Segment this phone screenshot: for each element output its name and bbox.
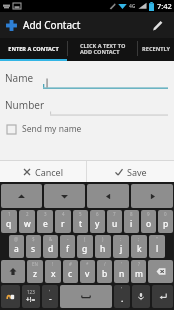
staticText: Name <box>5 71 34 85</box>
staticText: " <box>156 236 158 242</box>
staticText: f <box>66 243 69 255</box>
staticText: p <box>163 218 169 230</box>
button[interactable]: ' <box>114 260 129 283</box>
staticText: / <box>104 261 106 267</box>
button[interactable]: ; <box>131 235 147 258</box>
button[interactable]: Name <box>5 67 168 89</box>
staticText: z <box>33 268 37 280</box>
button[interactable]: ! <box>45 260 61 283</box>
button[interactable]: RECENTLY <box>138 38 174 59</box>
button[interactable]: ' <box>114 285 130 308</box>
staticText: 6 <box>96 211 99 217</box>
staticText: @ <box>14 236 19 242</box>
staticText: ) <box>102 236 104 242</box>
button[interactable]: 5 <box>73 210 88 233</box>
button[interactable]: ) <box>95 235 111 258</box>
staticText: 123 <box>27 289 35 295</box>
staticText: k <box>137 243 142 255</box>
button[interactable]: 3 <box>37 210 53 233</box>
button[interactable]: Arrow left <box>87 184 129 208</box>
button[interactable]: 8 <box>124 210 139 233</box>
button[interactable]: " <box>149 235 165 258</box>
staticText: & <box>49 236 53 242</box>
staticText: RECENTLY <box>142 45 170 53</box>
staticText: 7 <box>113 211 116 217</box>
staticText: Send my name <box>22 123 82 135</box>
button[interactable]: # <box>63 260 78 283</box>
button[interactable]: Arrow up <box>1 184 42 208</box>
staticText: i <box>130 218 133 230</box>
button[interactable]: 9 <box>141 210 156 233</box>
staticText: w <box>24 218 31 230</box>
button[interactable]: @ <box>9 235 24 258</box>
staticText: EN <box>32 261 38 267</box>
staticText: a <box>14 243 19 255</box>
staticText: Save <box>127 166 147 178</box>
staticText: b <box>102 268 108 280</box>
button[interactable]: EN <box>27 260 43 283</box>
staticText: y <box>95 218 100 230</box>
button[interactable]: ( <box>77 235 93 258</box>
staticText: 2 <box>26 211 29 217</box>
staticText: q <box>6 218 12 230</box>
button[interactable]: Send my name <box>6 121 83 137</box>
button[interactable]: Gesture typing <box>1 285 20 308</box>
button[interactable]: Arrow right <box>131 184 173 208</box>
staticText: * <box>86 261 89 267</box>
button[interactable]: Backspace <box>148 260 173 283</box>
staticText: n <box>119 268 125 280</box>
staticText: ; <box>138 236 140 242</box>
staticText: ENTER A CONTACT <box>8 45 59 53</box>
button[interactable]: 1 <box>1 210 17 233</box>
button[interactable]: Arrow down <box>44 184 85 208</box>
staticText: c <box>68 268 73 280</box>
staticText: Number <box>5 98 45 112</box>
staticText: $ <box>32 236 35 242</box>
button[interactable]: : <box>113 235 129 258</box>
button[interactable]: Edit <box>145 13 169 37</box>
button[interactable]: , <box>42 285 58 308</box>
button[interactable]: 0 <box>158 210 173 233</box>
staticText: s <box>31 243 36 255</box>
button[interactable]: - <box>60 235 75 258</box>
button[interactable]: $ <box>26 235 41 258</box>
staticText: : <box>120 236 122 242</box>
staticText: 3 <box>44 211 47 217</box>
staticText: - <box>67 236 69 242</box>
staticText: m <box>135 268 143 280</box>
staticText: r <box>61 218 65 230</box>
staticText: t <box>79 218 83 230</box>
staticText: ? <box>138 261 140 267</box>
button[interactable]: Add Contact <box>5 16 81 34</box>
button[interactable]: Save <box>87 161 174 182</box>
staticText: 7:42 <box>157 1 172 11</box>
button[interactable]: 6 <box>90 210 105 233</box>
button[interactable]: Number <box>5 94 168 116</box>
staticText: # <box>69 261 72 267</box>
button[interactable]: Symbols <box>22 285 40 308</box>
button[interactable]: 2 <box>19 210 35 233</box>
button[interactable]: CLICK A TEXT TO ADD CONTACT <box>68 38 137 59</box>
button[interactable]: Space <box>60 285 112 308</box>
staticText: o <box>146 218 152 230</box>
button[interactable]: Shift <box>1 260 25 283</box>
staticText: j <box>120 243 123 255</box>
button[interactable]: & <box>43 235 58 258</box>
staticText: ' <box>121 261 123 267</box>
button[interactable]: 4 <box>55 210 71 233</box>
button[interactable]: ? <box>131 260 146 283</box>
staticText: v <box>85 268 90 280</box>
button[interactable]: * <box>80 260 95 283</box>
staticText: 4G <box>129 3 136 10</box>
button[interactable]: Cancel <box>0 161 86 182</box>
button[interactable]: Voice input <box>132 285 150 308</box>
staticText: l <box>156 243 159 255</box>
button[interactable]: ENTER A CONTACT <box>0 38 67 59</box>
staticText: x <box>51 268 56 280</box>
staticText: 8 <box>130 211 133 217</box>
button[interactable]: Enter <box>152 285 173 308</box>
button[interactable]: / <box>97 260 112 283</box>
button[interactable]: 7 <box>107 210 122 233</box>
staticText: d <box>48 243 54 255</box>
staticText: h <box>100 243 106 255</box>
